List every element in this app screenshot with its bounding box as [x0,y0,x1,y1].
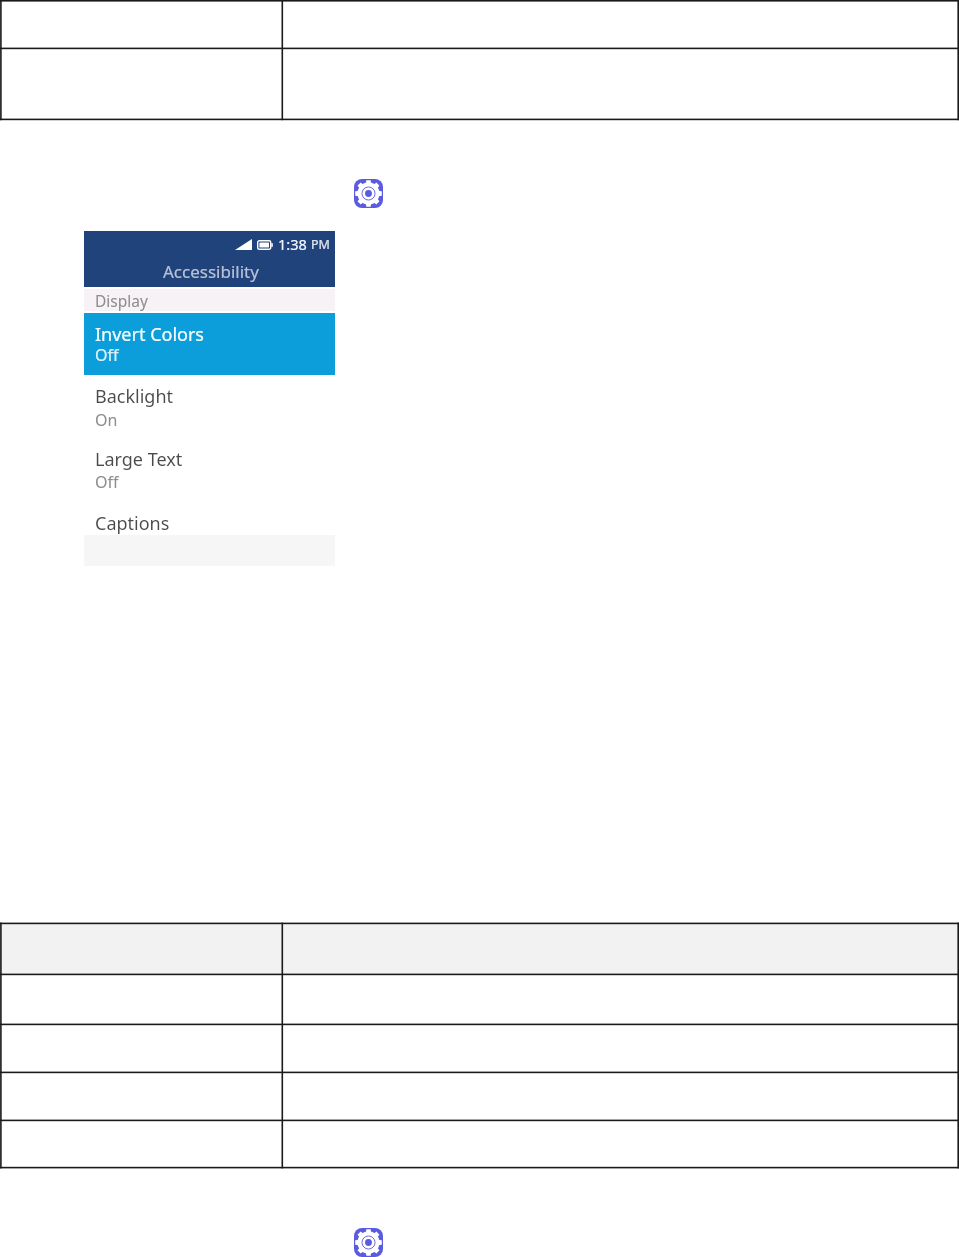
button[interactable]: Invert Colors [84,313,335,375]
staticText: On [95,409,118,431]
staticText: Large Text [95,447,183,472]
staticText: Captions [95,511,170,536]
staticText: Backlight [95,384,174,409]
button[interactable]: Large Text [84,438,335,501]
staticText: Display [95,290,148,311]
staticText: Invert Colors [95,322,204,347]
staticText: PM [311,236,330,253]
button[interactable]: Settings [354,1228,383,1257]
button[interactable]: Captions [84,501,335,536]
staticText: 1:38 [278,234,307,254]
staticText: Accessibility [163,260,259,283]
staticText: Off [95,471,119,493]
staticText: Off [95,344,119,366]
button[interactable]: Backlight [84,375,335,438]
button[interactable]: Settings [354,179,383,208]
